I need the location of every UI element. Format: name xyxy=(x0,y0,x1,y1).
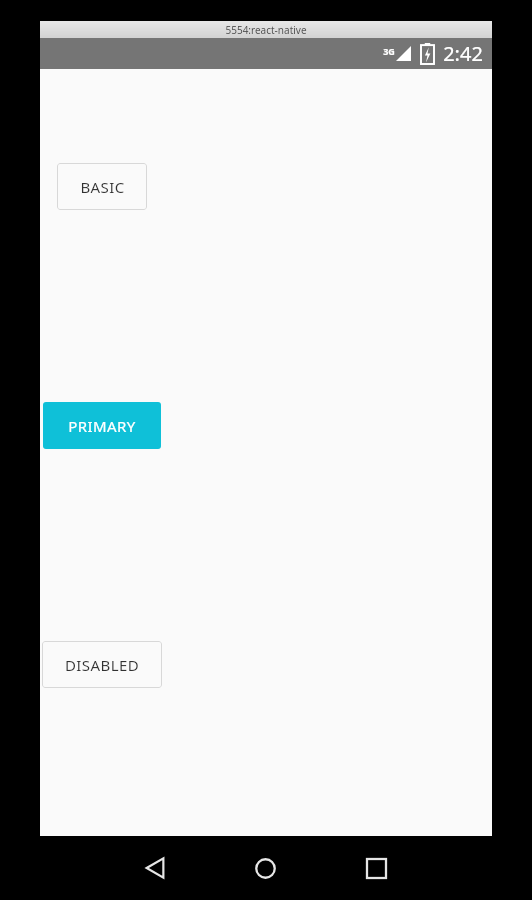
staticText: 3G xyxy=(383,45,395,57)
button[interactable]: DISABLED xyxy=(42,641,162,688)
staticText: BASIC xyxy=(80,177,125,197)
staticText: DISABLED xyxy=(65,655,139,675)
button[interactable]: Recent apps xyxy=(321,836,432,900)
button[interactable]: Home xyxy=(210,836,321,900)
staticText: 2:42 xyxy=(443,40,483,67)
button[interactable]: BASIC xyxy=(57,163,147,210)
staticText: PRIMARY xyxy=(68,416,136,436)
staticText: 5554:react-native xyxy=(225,23,307,37)
button[interactable]: PRIMARY xyxy=(43,402,161,449)
button[interactable]: Back xyxy=(100,836,210,900)
